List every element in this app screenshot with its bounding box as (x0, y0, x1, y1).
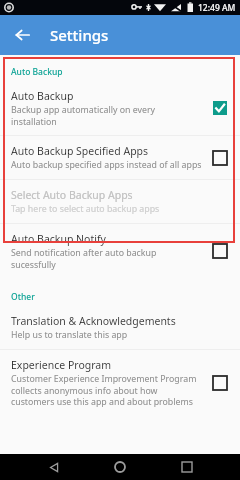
staticText: Auto Backup (11, 66, 240, 78)
button[interactable]: Auto Backup (0, 81, 240, 135)
staticText: Other (11, 291, 240, 303)
staticText: Help us to translate this app (11, 329, 128, 341)
button[interactable]: Auto Backup Specified Apps (0, 136, 240, 179)
staticText: Select Auto Backup Apps (11, 188, 133, 202)
button[interactable]: Recent apps (174, 454, 200, 480)
button[interactable]: Select Auto Backup Apps (0, 180, 240, 223)
button[interactable]: Translation & Acknowledgements (0, 306, 240, 349)
staticText: Auto Backup (11, 89, 74, 103)
staticText: Auto Backup Notify (11, 232, 106, 246)
staticText: Auto backup specified apps instead of al… (11, 159, 202, 171)
staticText: Settings (50, 25, 109, 45)
button[interactable]: Back (6, 19, 38, 51)
staticText: 12:49 AM (198, 2, 236, 14)
staticText: Tap here to select auto backup apps (11, 203, 160, 215)
button[interactable]: Experience Program (0, 350, 240, 415)
button[interactable]: Auto Backup checkbox (208, 96, 232, 120)
button[interactable]: Experience Program checkbox (208, 371, 232, 395)
button[interactable]: Home (107, 454, 133, 480)
button[interactable]: Auto Backup Notify checkbox (208, 239, 232, 263)
button[interactable]: Auto Backup Notify (0, 224, 240, 278)
button[interactable]: Auto Backup Specified Apps checkbox (208, 146, 232, 170)
button[interactable]: Back (41, 454, 67, 480)
staticText: Backup app automatically on every instal… (11, 104, 202, 127)
staticText: Send notification after auto backup suce… (11, 247, 202, 270)
staticText: Customer Experience Improvement Program … (11, 373, 202, 407)
staticText: Experience Program (11, 358, 112, 372)
staticText: Auto Backup Specified Apps (11, 144, 149, 158)
staticText: Translation & Acknowledgements (11, 314, 176, 328)
